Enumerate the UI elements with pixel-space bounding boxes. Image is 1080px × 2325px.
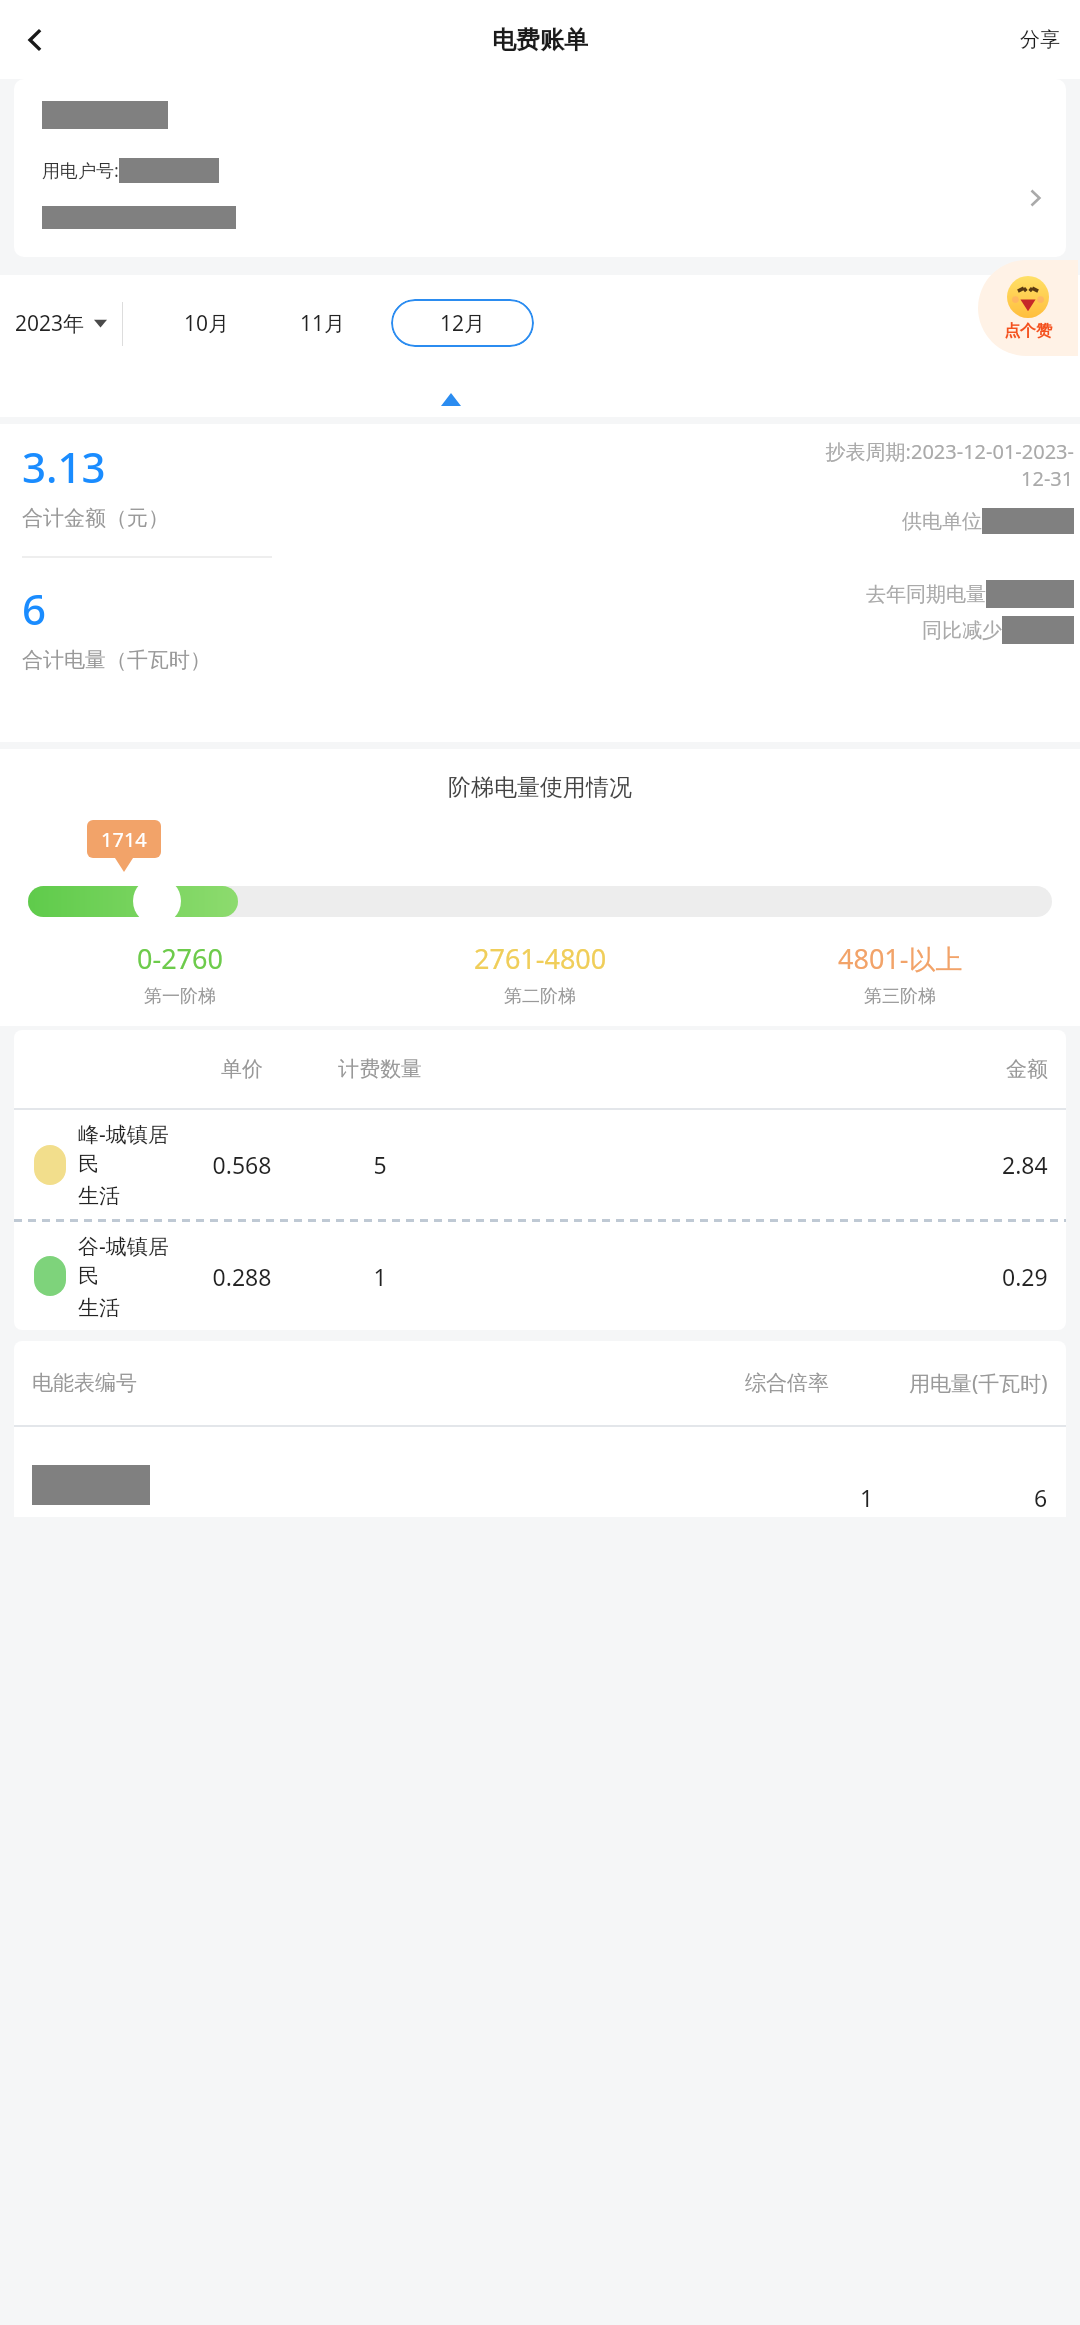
button[interactable]: 点个赞 (978, 260, 1078, 356)
button[interactable]: Usage slider (133, 877, 181, 925)
staticText: 分享 (1020, 27, 1060, 52)
staticText: 2.84 (1002, 1149, 1048, 1180)
staticText: 阶梯电量使用情况 (0, 773, 1080, 802)
button[interactable]: 12月 (391, 299, 534, 347)
staticText: 11月 (300, 309, 346, 338)
staticText: 12月 (440, 309, 486, 338)
button[interactable]: 分享 (1012, 21, 1068, 58)
staticText: 1 (860, 1482, 874, 1513)
staticText: 第一阶梯 (144, 985, 216, 1008)
staticText: 峰-城镇居民 (78, 1120, 184, 1177)
staticText: 单价 (184, 1056, 300, 1082)
staticText: 0-2760 (137, 940, 223, 977)
staticText: 抄表周期:2023-12-01-2023- (825, 438, 1074, 465)
staticText: 1714 (101, 826, 147, 853)
button[interactable]: 2023年 (0, 275, 122, 371)
staticText: 第三阶梯 (864, 985, 936, 1008)
staticText: 同比减少 (922, 618, 1002, 643)
button[interactable]: 谷-城镇居民 (14, 1222, 1066, 1330)
staticText: 点个赞 (1004, 321, 1052, 341)
staticText: 生活 (78, 1295, 120, 1321)
staticText: 3.13 (22, 438, 106, 495)
button[interactable]: 用电户号: (14, 79, 1066, 257)
staticText: 计费数量 (300, 1056, 460, 1082)
button[interactable]: 10月 (169, 299, 245, 347)
button[interactable]: 11月 (285, 299, 361, 347)
staticText: 电费账单 (492, 25, 588, 55)
staticText: 用电量(千瓦时) (909, 1369, 1048, 1398)
staticText: 生活 (78, 1183, 120, 1209)
staticText: 4801-以上 (838, 940, 963, 977)
staticText: 第二阶梯 (504, 985, 576, 1008)
staticText: 去年同期电量 (866, 582, 986, 607)
staticText: 供电单位 (902, 509, 982, 534)
staticText: 12-31 (1021, 465, 1074, 492)
staticText: 0.568 (184, 1149, 300, 1180)
staticText: 电能表编号 (32, 1370, 137, 1396)
staticText: 6 (22, 580, 47, 637)
staticText: 用电户号: (42, 158, 119, 183)
staticText: 0.29 (1002, 1261, 1048, 1292)
staticText: 谷-城镇居民 (78, 1232, 184, 1289)
staticText: 10月 (184, 309, 230, 338)
staticText: 2761-4800 (474, 940, 607, 977)
staticText: 金额 (1006, 1056, 1048, 1082)
staticText: 5 (300, 1149, 460, 1180)
button[interactable]: Back (14, 18, 58, 62)
staticText: 综合倍率 (745, 1370, 829, 1396)
staticText: 6 (1034, 1482, 1048, 1513)
staticText: 2023年 (15, 309, 85, 338)
staticText: 1 (300, 1261, 460, 1292)
staticText: 0.288 (184, 1261, 300, 1292)
staticText: 合计电量（千瓦时） (22, 647, 211, 673)
button[interactable]: 峰-城镇居民 (14, 1110, 1066, 1219)
staticText: 合计金额（元） (22, 505, 169, 531)
